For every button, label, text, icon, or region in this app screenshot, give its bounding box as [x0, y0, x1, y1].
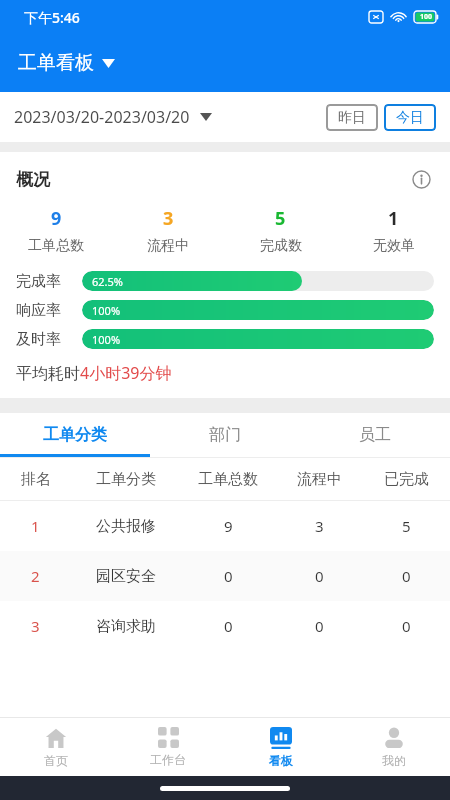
staticText: 5: [402, 516, 411, 536]
button[interactable]: 信息说明: [408, 166, 434, 192]
button[interactable]: 3: [112, 206, 224, 255]
staticText: 我的: [382, 753, 406, 768]
staticText: 员工: [359, 425, 391, 445]
staticText: 0: [315, 566, 324, 586]
staticText: 咨询求助: [96, 617, 156, 636]
staticText: 完成率: [16, 272, 78, 291]
staticText: 概况: [16, 169, 50, 190]
staticText: 0: [224, 566, 233, 586]
button[interactable]: 1: [337, 206, 450, 255]
staticText: 100%: [92, 332, 121, 347]
staticText: 2: [31, 566, 40, 586]
staticText: 0: [402, 566, 411, 586]
button[interactable]: 3: [0, 601, 450, 651]
staticText: 1: [388, 206, 399, 231]
staticText: 工单看板: [18, 51, 94, 75]
button[interactable]: 昨日: [326, 104, 378, 131]
button[interactable]: 今日: [384, 104, 436, 131]
staticText: 昨日: [338, 109, 366, 127]
staticText: 62.5%: [92, 274, 123, 289]
staticText: 工单分类: [43, 425, 107, 445]
staticText: 3: [315, 516, 324, 536]
staticText: 0: [224, 616, 233, 636]
button[interactable]: 看板: [224, 718, 337, 776]
staticText: 看板: [269, 753, 293, 768]
staticText: 100%: [92, 303, 121, 318]
staticText: 平均耗时4小时39分钟: [16, 362, 172, 384]
staticText: 响应率: [16, 301, 78, 320]
button[interactable]: 员工: [300, 413, 450, 457]
staticText: 流程中: [297, 470, 342, 489]
staticText: 工单总数: [198, 470, 258, 489]
button[interactable]: 2: [0, 551, 450, 601]
staticText: 9: [224, 516, 233, 536]
button[interactable]: 工单分类: [0, 413, 150, 457]
staticText: 工单总数: [28, 237, 84, 255]
button[interactable]: 9: [0, 206, 112, 255]
staticText: 工作台: [150, 752, 186, 767]
staticText: 已完成: [384, 470, 429, 489]
staticText: 今日: [396, 109, 424, 127]
staticText: 公共报修: [96, 517, 156, 536]
button[interactable]: 部门: [150, 413, 300, 457]
button[interactable]: 排名: [0, 458, 450, 500]
staticText: 流程中: [147, 237, 189, 255]
staticText: 园区安全: [96, 567, 156, 586]
button[interactable]: 首页: [0, 718, 112, 776]
staticText: 及时率: [16, 330, 78, 349]
staticText: 无效单: [373, 237, 415, 255]
button[interactable]: 2023/03/20-2023/03/20: [14, 100, 212, 134]
button[interactable]: 1: [0, 501, 450, 551]
staticText: 下午5:46: [24, 8, 80, 27]
staticText: 5: [275, 206, 286, 231]
button[interactable]: 工作台: [112, 718, 224, 776]
staticText: 3: [31, 616, 40, 636]
button[interactable]: 我的: [337, 718, 450, 776]
staticText: 100: [420, 12, 433, 22]
staticText: 0: [315, 616, 324, 636]
staticText: 9: [51, 206, 62, 231]
button[interactable]: 工单看板: [14, 47, 119, 79]
staticText: 0: [402, 616, 411, 636]
staticText: 1: [31, 516, 40, 536]
button[interactable]: 5: [224, 206, 337, 255]
staticText: 工单分类: [96, 470, 156, 489]
staticText: 首页: [44, 753, 68, 768]
staticText: 完成数: [260, 237, 302, 255]
staticText: 排名: [21, 470, 51, 489]
staticText: 部门: [209, 425, 241, 445]
staticText: 2023/03/20-2023/03/20: [14, 106, 190, 128]
staticText: 3: [163, 206, 174, 231]
